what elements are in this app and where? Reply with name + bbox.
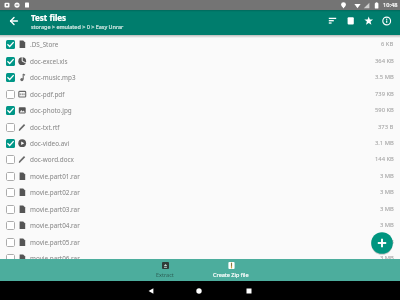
button[interactable]: doc-word.docx: [0, 151, 400, 167]
staticText: 6 KB: [381, 40, 394, 48]
button[interactable]: [6, 254, 15, 263]
staticText: 3 MB: [380, 238, 394, 246]
staticText: 3 MB: [380, 254, 394, 262]
staticText: 10:48: [383, 1, 398, 9]
staticText: 590 KB: [375, 106, 394, 114]
staticText: storage > emulated > 0 > Easy Unrar: [31, 23, 124, 30]
staticText: doc-pdf.pdf: [30, 90, 65, 99]
staticText: doc-photo.jpg: [30, 106, 72, 115]
button[interactable]: movie.part02.rar: [0, 184, 400, 200]
button[interactable]: movie.part01.rar: [0, 168, 400, 184]
staticText: movie.part04.rar: [30, 221, 80, 230]
staticText: movie.part06.rar: [30, 254, 80, 263]
button[interactable]: [242, 281, 256, 300]
button[interactable]: .DS_Store: [0, 36, 400, 52]
staticText: .DS_Store: [30, 40, 59, 49]
staticText: 3 MB: [380, 172, 394, 180]
staticText: 739 KB: [375, 90, 394, 98]
button[interactable]: [380, 14, 394, 28]
staticText: doc-music.mp3: [30, 73, 76, 82]
button[interactable]: movie.part03.rar: [0, 201, 400, 217]
button[interactable]: [371, 232, 393, 254]
button[interactable]: [3, 10, 25, 32]
button[interactable]: [6, 221, 15, 230]
staticText: doc-txt.rtf: [30, 123, 60, 132]
staticText: 373 B: [378, 123, 394, 131]
staticText: Extract: [156, 271, 174, 278]
button[interactable]: [144, 281, 158, 300]
staticText: 3 MB: [380, 205, 394, 213]
staticText: 3 MB: [380, 221, 394, 229]
button[interactable]: Create Zip file: [196, 259, 266, 281]
staticText: 3.5 MB: [375, 73, 394, 81]
button[interactable]: [192, 281, 206, 300]
staticText: Test files: [31, 12, 67, 23]
button[interactable]: doc-pdf.pdf: [0, 86, 400, 102]
staticText: doc-word.docx: [30, 155, 74, 164]
staticText: movie.part03.rar: [30, 205, 80, 214]
button[interactable]: [362, 14, 376, 28]
button[interactable]: [6, 238, 15, 247]
button[interactable]: [6, 155, 15, 164]
staticText: movie.part01.rar: [30, 172, 80, 181]
staticText: 364 KB: [375, 57, 394, 65]
staticText: 144 KB: [375, 155, 394, 163]
staticText: doc-video.avi: [30, 139, 70, 148]
button[interactable]: movie.part06.rar: [0, 250, 400, 266]
button[interactable]: [6, 90, 15, 99]
button[interactable]: movie.part04.rar: [0, 217, 400, 233]
staticText: 3 MB: [380, 188, 394, 196]
button[interactable]: movie.part05.rar: [0, 234, 400, 250]
button[interactable]: [326, 14, 340, 28]
button[interactable]: doc-excel.xls: [0, 53, 400, 69]
button[interactable]: [6, 106, 15, 115]
staticText: doc-excel.xls: [30, 57, 68, 66]
button[interactable]: doc-video.avi: [0, 135, 400, 151]
staticText: movie.part05.rar: [30, 238, 80, 247]
button[interactable]: [6, 139, 15, 148]
staticText: movie.part02.rar: [30, 188, 80, 197]
button[interactable]: [344, 14, 358, 28]
button[interactable]: [6, 188, 15, 197]
button[interactable]: doc-photo.jpg: [0, 102, 400, 118]
button[interactable]: [6, 123, 15, 132]
staticText: Create Zip file: [213, 271, 249, 278]
button[interactable]: [6, 172, 15, 181]
button[interactable]: Extract: [143, 259, 187, 281]
button[interactable]: doc-txt.rtf: [0, 119, 400, 135]
button[interactable]: [6, 57, 15, 66]
button[interactable]: [6, 40, 15, 49]
button[interactable]: doc-music.mp3: [0, 69, 400, 85]
button[interactable]: [6, 73, 15, 82]
staticText: 3.1 MB: [375, 139, 394, 147]
button[interactable]: [6, 205, 15, 214]
